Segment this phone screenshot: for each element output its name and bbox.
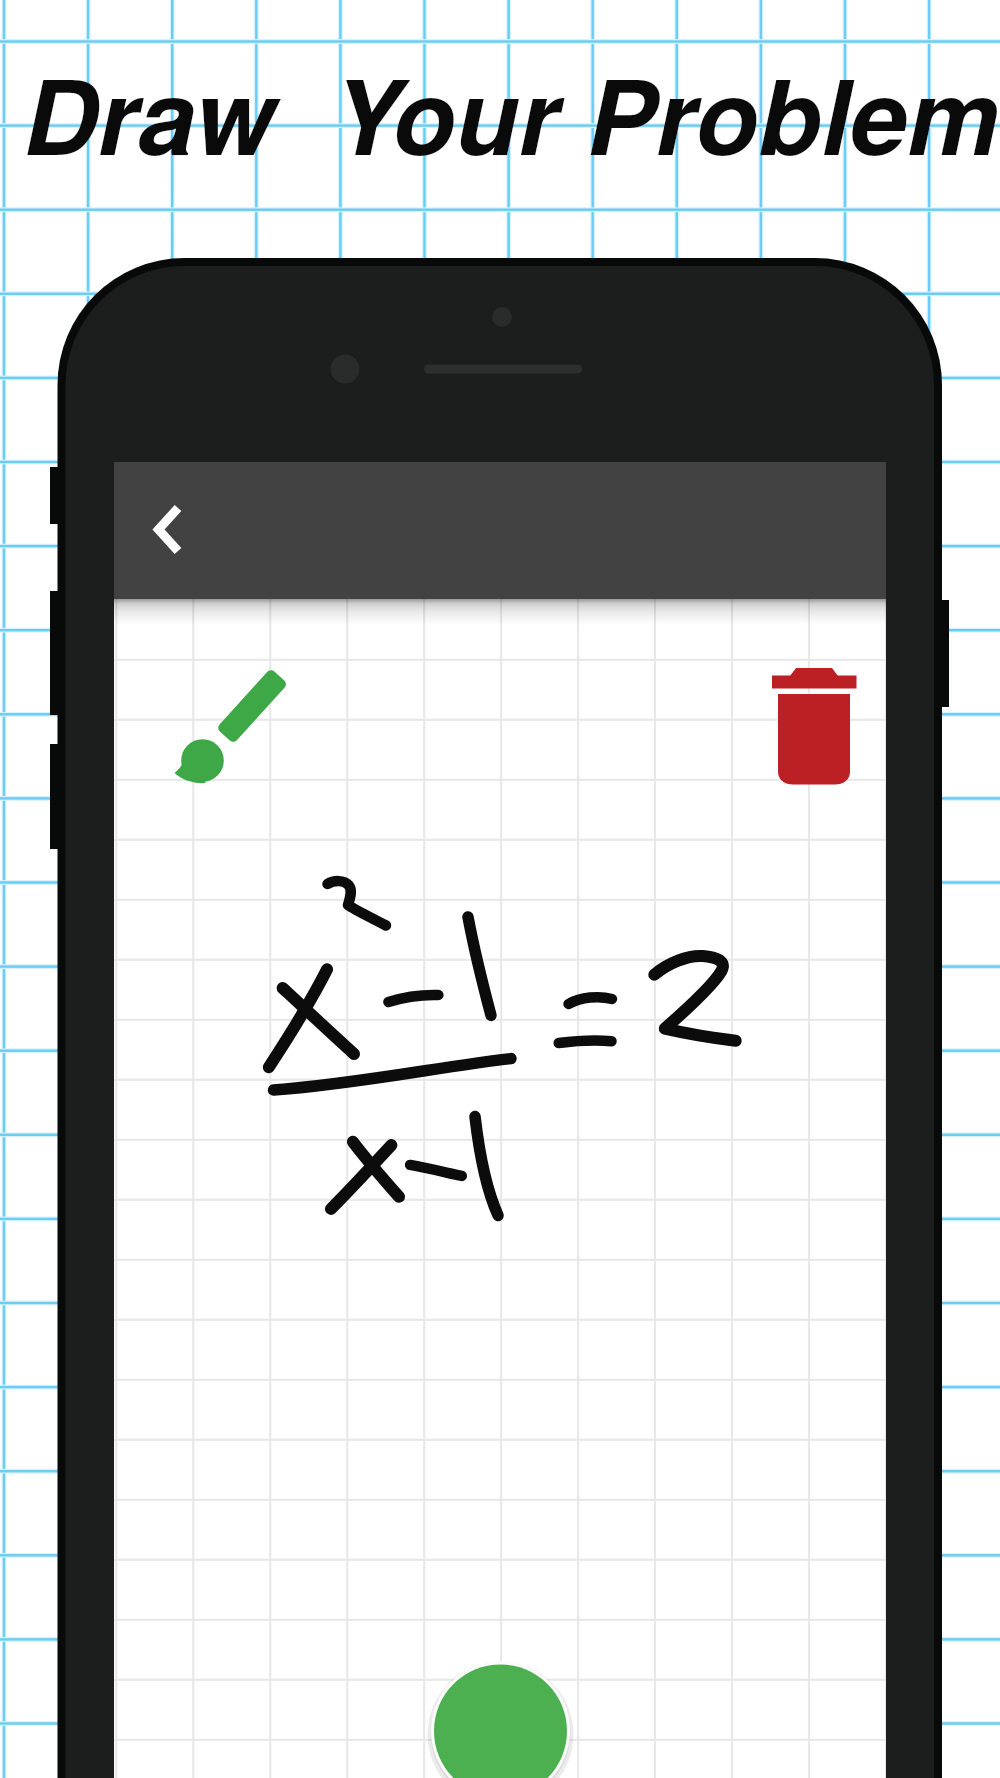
button[interactable]: Brush tool xyxy=(166,650,294,790)
button[interactable]: Solve xyxy=(434,1661,567,1778)
button[interactable]: Clear drawing xyxy=(762,650,868,790)
button[interactable]: Navigate back xyxy=(114,462,224,599)
